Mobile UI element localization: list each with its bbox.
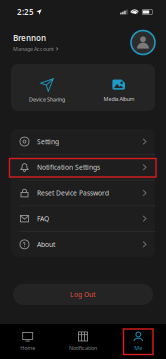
staticText: 2:25 (17, 7, 34, 17)
button[interactable]: Profile (131, 30, 155, 54)
button[interactable]: About (11, 232, 155, 257)
staticText: Notification (69, 344, 97, 352)
staticText: FAQ (37, 214, 49, 223)
button[interactable]: Log Out (13, 284, 153, 305)
button[interactable]: Manage Account (13, 45, 58, 52)
staticText: About (37, 240, 55, 249)
staticText: Manage Account (13, 45, 54, 52)
staticText: Media Album (103, 95, 134, 103)
staticText: Brennon (13, 33, 46, 43)
button[interactable]: Notification Settings (11, 155, 155, 180)
button[interactable]: Setting (11, 129, 155, 155)
button[interactable]: Reset Device Password (11, 180, 155, 206)
staticText: Reset Device Password (37, 188, 109, 197)
button[interactable]: Device Sharing (11, 64, 83, 111)
button[interactable]: Notification (55, 324, 111, 359)
staticText: Home (20, 344, 35, 352)
button[interactable]: Home (0, 324, 55, 359)
staticText: Me (134, 344, 142, 352)
button[interactable]: Media Album (83, 64, 155, 111)
staticText: Setting (37, 137, 59, 146)
staticText: Device Sharing (29, 96, 65, 103)
staticText: Notification Settings (37, 163, 100, 172)
staticText: Log Out (70, 290, 96, 299)
button[interactable]: FAQ (11, 206, 155, 232)
button[interactable]: Me (111, 324, 166, 359)
